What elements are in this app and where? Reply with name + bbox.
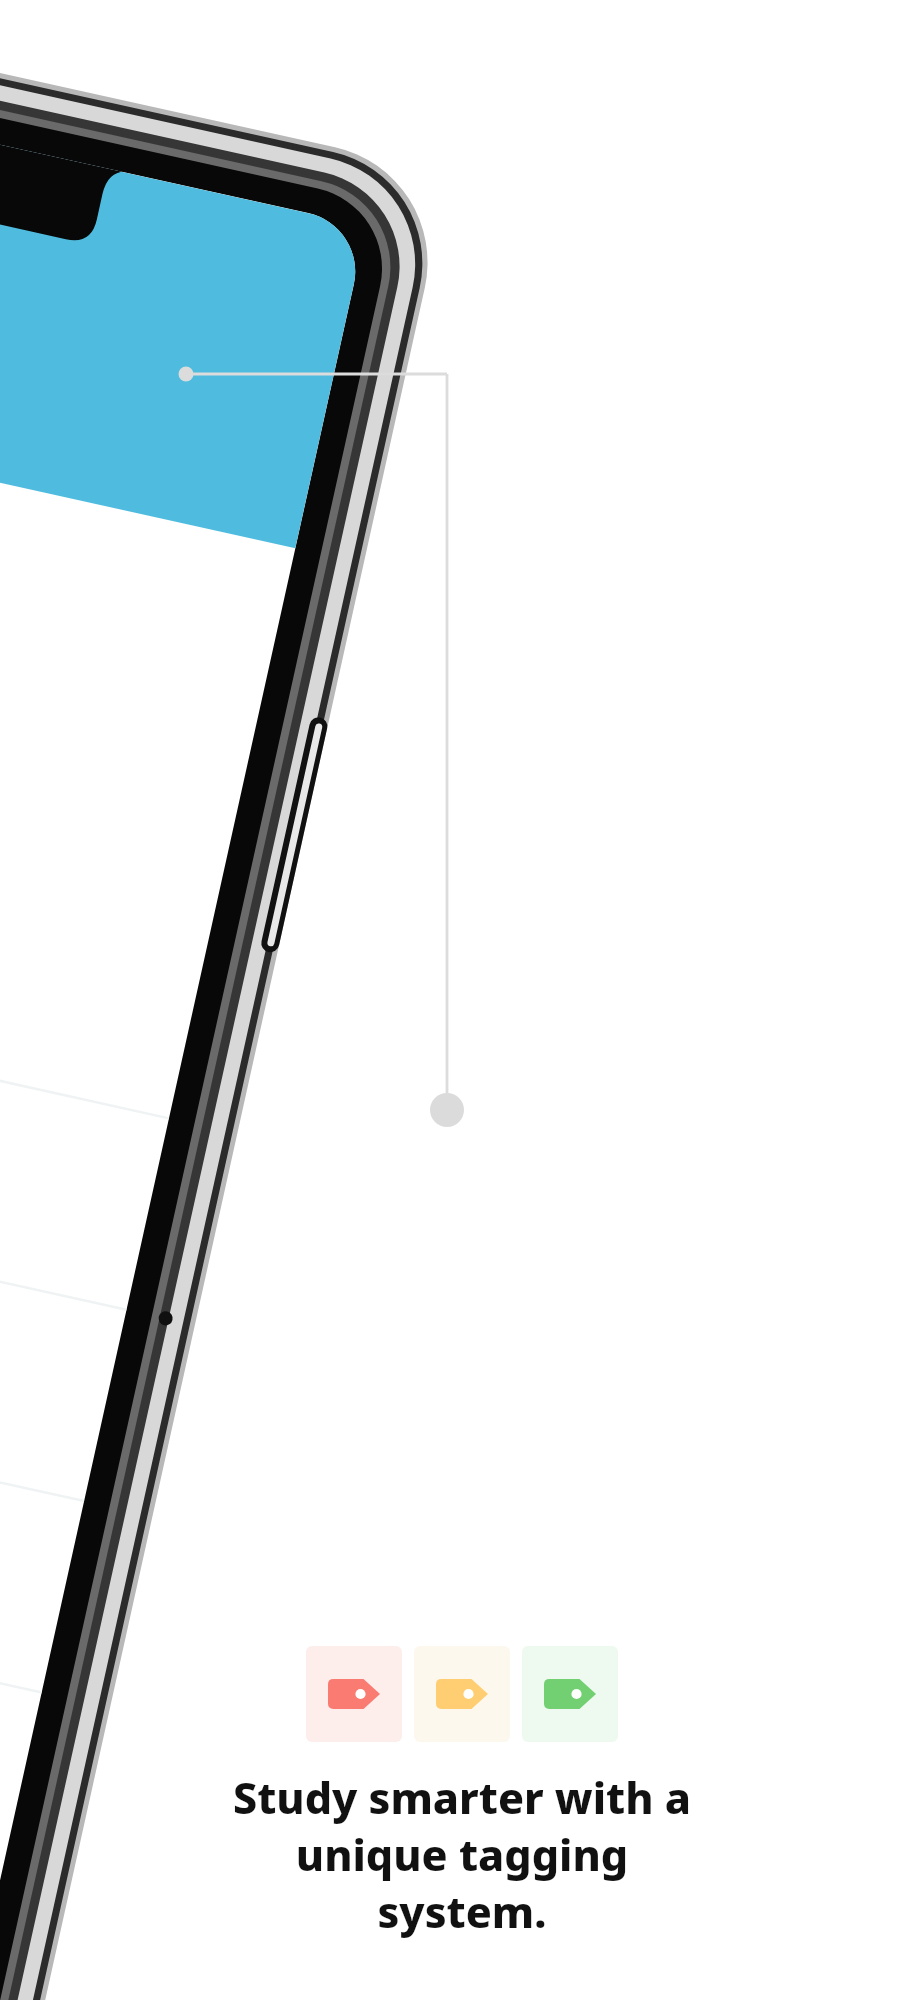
button[interactable]: Green tag xyxy=(522,1646,618,1742)
button[interactable]: Yellow tag xyxy=(414,1646,510,1742)
staticText: Study smarter with a unique tagging syst… xyxy=(227,1768,697,1940)
button[interactable]: Red tag xyxy=(306,1646,402,1742)
